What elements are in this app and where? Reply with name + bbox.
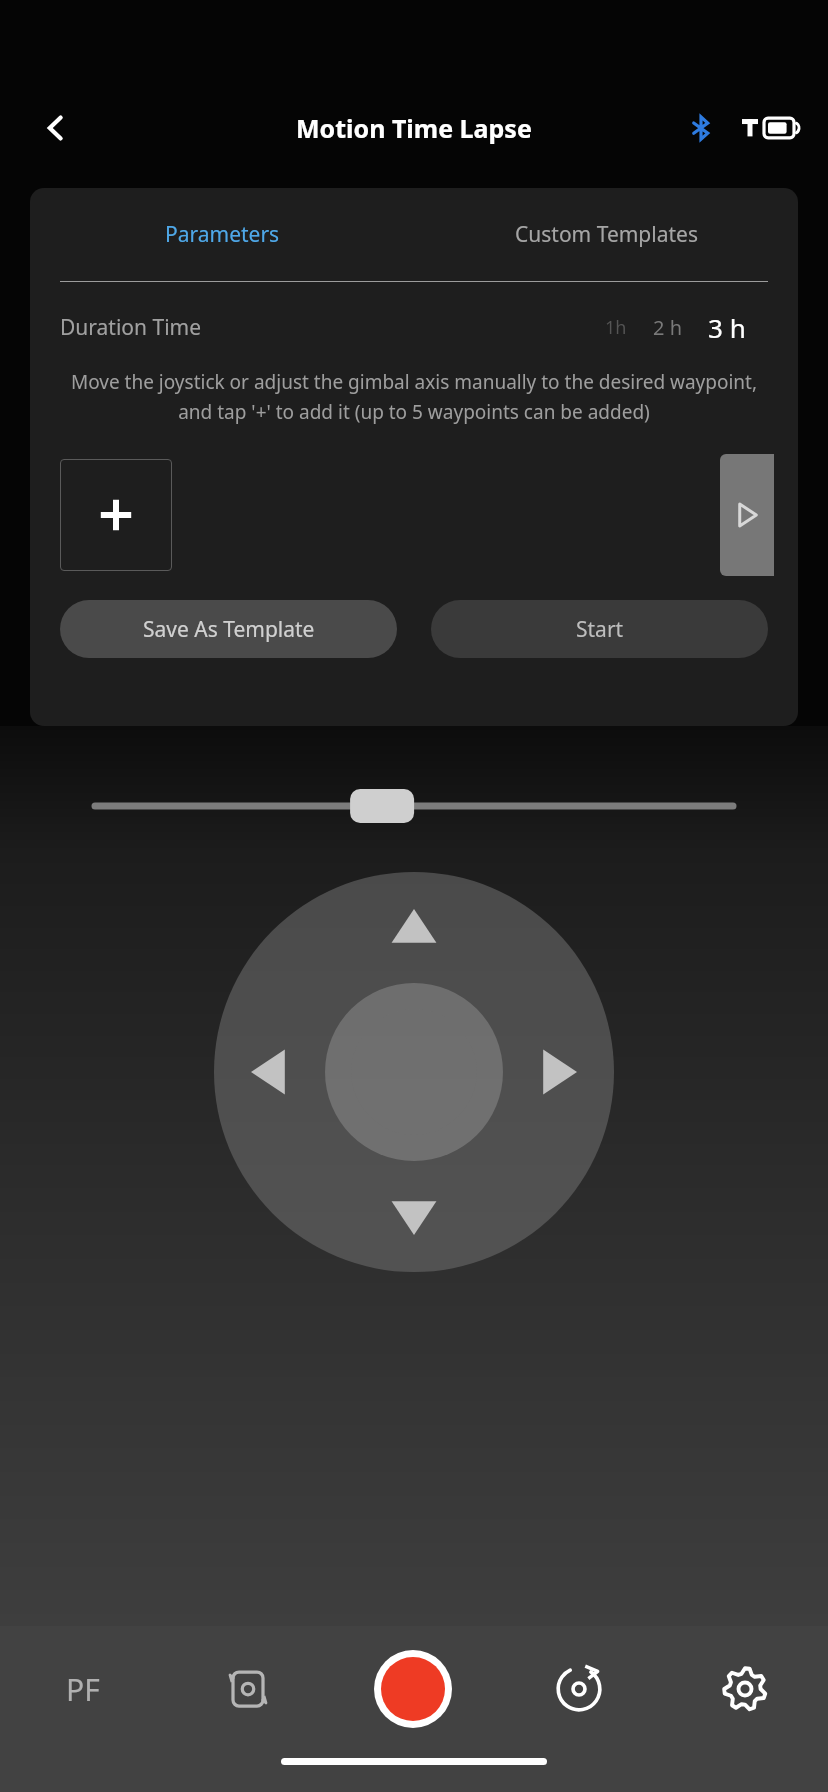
button[interactable]: Add waypoint — [60, 459, 172, 571]
button[interactable]: Start — [431, 600, 768, 658]
button[interactable]: 1h — [605, 315, 627, 340]
staticText: PF — [66, 1669, 100, 1710]
button[interactable]: Record — [330, 1626, 496, 1752]
staticText: 2 h — [653, 314, 682, 341]
button[interactable]: 3 h — [708, 310, 746, 345]
staticText: Save As Template — [143, 615, 315, 644]
staticText: Parameters — [165, 220, 280, 249]
staticText: Start — [576, 615, 624, 644]
staticText: Move the joystick or adjust the gimbal a… — [62, 369, 766, 424]
button[interactable]: Joystick — [214, 872, 614, 1272]
button[interactable]: Playback — [496, 1626, 662, 1752]
button[interactable]: Zoom slider — [95, 784, 733, 828]
button[interactable]: Switch camera — [165, 1626, 330, 1752]
button[interactable]: Back — [30, 102, 82, 154]
button[interactable]: Settings — [662, 1626, 828, 1752]
staticText: Motion Time Lapse — [296, 111, 532, 145]
staticText: Duration Time — [60, 313, 202, 342]
button[interactable]: Custom Templates — [414, 210, 798, 259]
button[interactable]: PF mode — [0, 1626, 165, 1752]
other: Bluetooth — [688, 115, 714, 141]
button[interactable]: Preview — [720, 454, 774, 576]
button[interactable]: Save As Template — [60, 600, 397, 658]
button[interactable]: 2 h — [653, 314, 682, 341]
staticText: 1h — [605, 315, 627, 340]
staticText: 3 h — [708, 310, 746, 345]
button[interactable]: Parameters — [30, 210, 414, 259]
staticText: Custom Templates — [515, 220, 698, 249]
